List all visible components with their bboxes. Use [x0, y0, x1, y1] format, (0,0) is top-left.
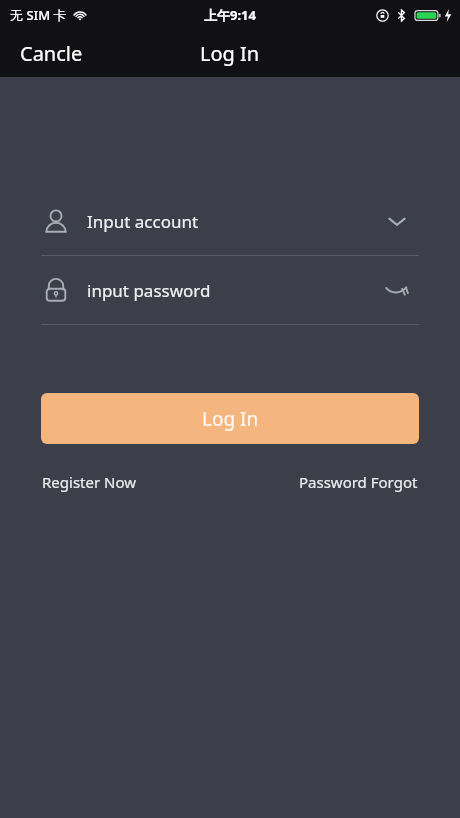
- button[interactable]: Password Forgot: [299, 472, 418, 492]
- staticText: Register Now: [42, 472, 137, 492]
- staticText: Input account: [87, 210, 375, 233]
- staticText: 无 SIM 卡: [10, 6, 67, 24]
- staticText: Log In: [202, 406, 259, 432]
- staticText: Password Forgot: [299, 472, 418, 492]
- staticText: 上午9:14: [204, 6, 256, 24]
- button[interactable]: Cancle: [0, 36, 93, 71]
- button[interactable]: Show password: [375, 268, 419, 312]
- button[interactable]: Register Now: [42, 472, 137, 492]
- button[interactable]: Log In: [41, 393, 419, 444]
- button[interactable]: input password: [41, 256, 419, 324]
- button[interactable]: Show saved accounts: [375, 199, 419, 243]
- staticText: input password: [87, 279, 375, 302]
- staticText: Cancle: [20, 40, 83, 67]
- staticText: Log In: [200, 40, 260, 67]
- button[interactable]: Input account: [41, 187, 419, 255]
